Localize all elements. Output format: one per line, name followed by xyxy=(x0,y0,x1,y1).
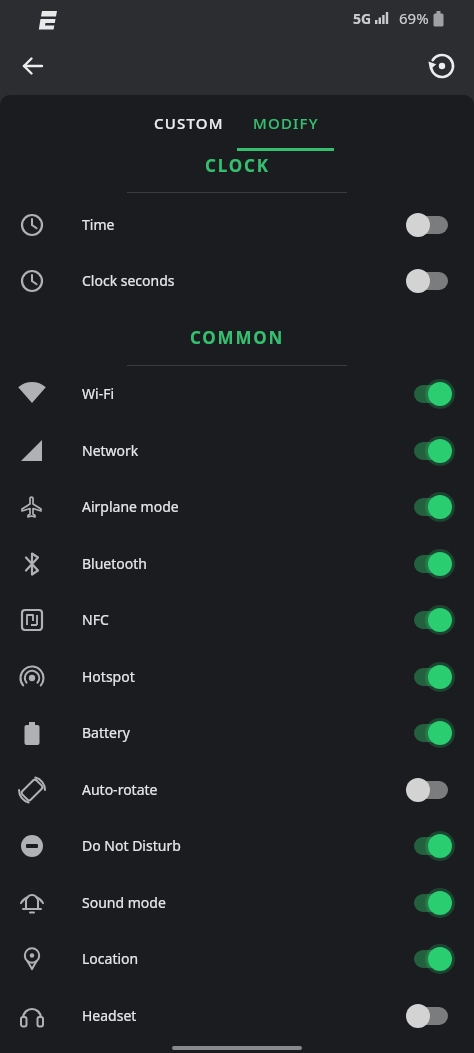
staticText: Auto-rotate xyxy=(82,780,158,799)
button[interactable]: Airplane mode xyxy=(0,478,474,535)
staticText: Time xyxy=(82,215,115,234)
staticText: Battery xyxy=(82,723,130,742)
button[interactable] xyxy=(406,211,452,239)
button[interactable] xyxy=(406,663,452,691)
staticText: Wi-Fi xyxy=(82,384,115,403)
button[interactable] xyxy=(423,47,461,85)
button[interactable]: Sound mode xyxy=(0,874,474,931)
staticText: MODIFY xyxy=(253,113,319,133)
staticText: Clock seconds xyxy=(82,271,175,290)
button[interactable]: Auto-rotate xyxy=(0,761,474,818)
button[interactable]: Headset xyxy=(0,987,474,1044)
button[interactable] xyxy=(406,889,452,917)
staticText: COMMON xyxy=(190,326,285,349)
button[interactable] xyxy=(406,719,452,747)
button[interactable]: Hotspot xyxy=(0,648,474,705)
button[interactable]: Battery xyxy=(0,704,474,761)
button[interactable] xyxy=(14,47,52,85)
button[interactable]: Network xyxy=(0,422,474,479)
button[interactable]: MODIFY xyxy=(237,95,334,151)
staticText: Bluetooth xyxy=(82,554,147,573)
staticText: Hotspot xyxy=(82,667,135,686)
button[interactable] xyxy=(406,832,452,860)
button[interactable] xyxy=(406,267,452,295)
button[interactable] xyxy=(406,606,452,634)
button[interactable]: NFC xyxy=(0,591,474,648)
staticText: CLOCK xyxy=(205,154,270,177)
staticText: 69% xyxy=(399,8,429,28)
staticText: CUSTOM xyxy=(154,113,224,133)
staticText: Airplane mode xyxy=(82,497,179,516)
staticText: Network xyxy=(82,441,139,460)
button[interactable]: CUSTOM xyxy=(140,95,237,151)
button[interactable] xyxy=(406,776,452,804)
button[interactable]: Do Not Disturb xyxy=(0,817,474,874)
staticText: Headset xyxy=(82,1006,137,1025)
button[interactable]: Location xyxy=(0,930,474,987)
button[interactable] xyxy=(406,437,452,465)
button[interactable] xyxy=(406,945,452,973)
button[interactable]: Clock seconds xyxy=(0,252,474,309)
button[interactable] xyxy=(406,493,452,521)
button[interactable] xyxy=(406,380,452,408)
button[interactable]: Bluetooth xyxy=(0,535,474,592)
staticText: Do Not Disturb xyxy=(82,836,181,855)
staticText: Location xyxy=(82,949,139,968)
staticText: NFC xyxy=(82,610,109,629)
staticText: 5G xyxy=(353,9,372,28)
staticText: Sound mode xyxy=(82,893,166,912)
button[interactable] xyxy=(406,550,452,578)
button[interactable]: Time xyxy=(0,196,474,253)
button[interactable] xyxy=(406,1002,452,1030)
button[interactable]: Wi-Fi xyxy=(0,365,474,422)
